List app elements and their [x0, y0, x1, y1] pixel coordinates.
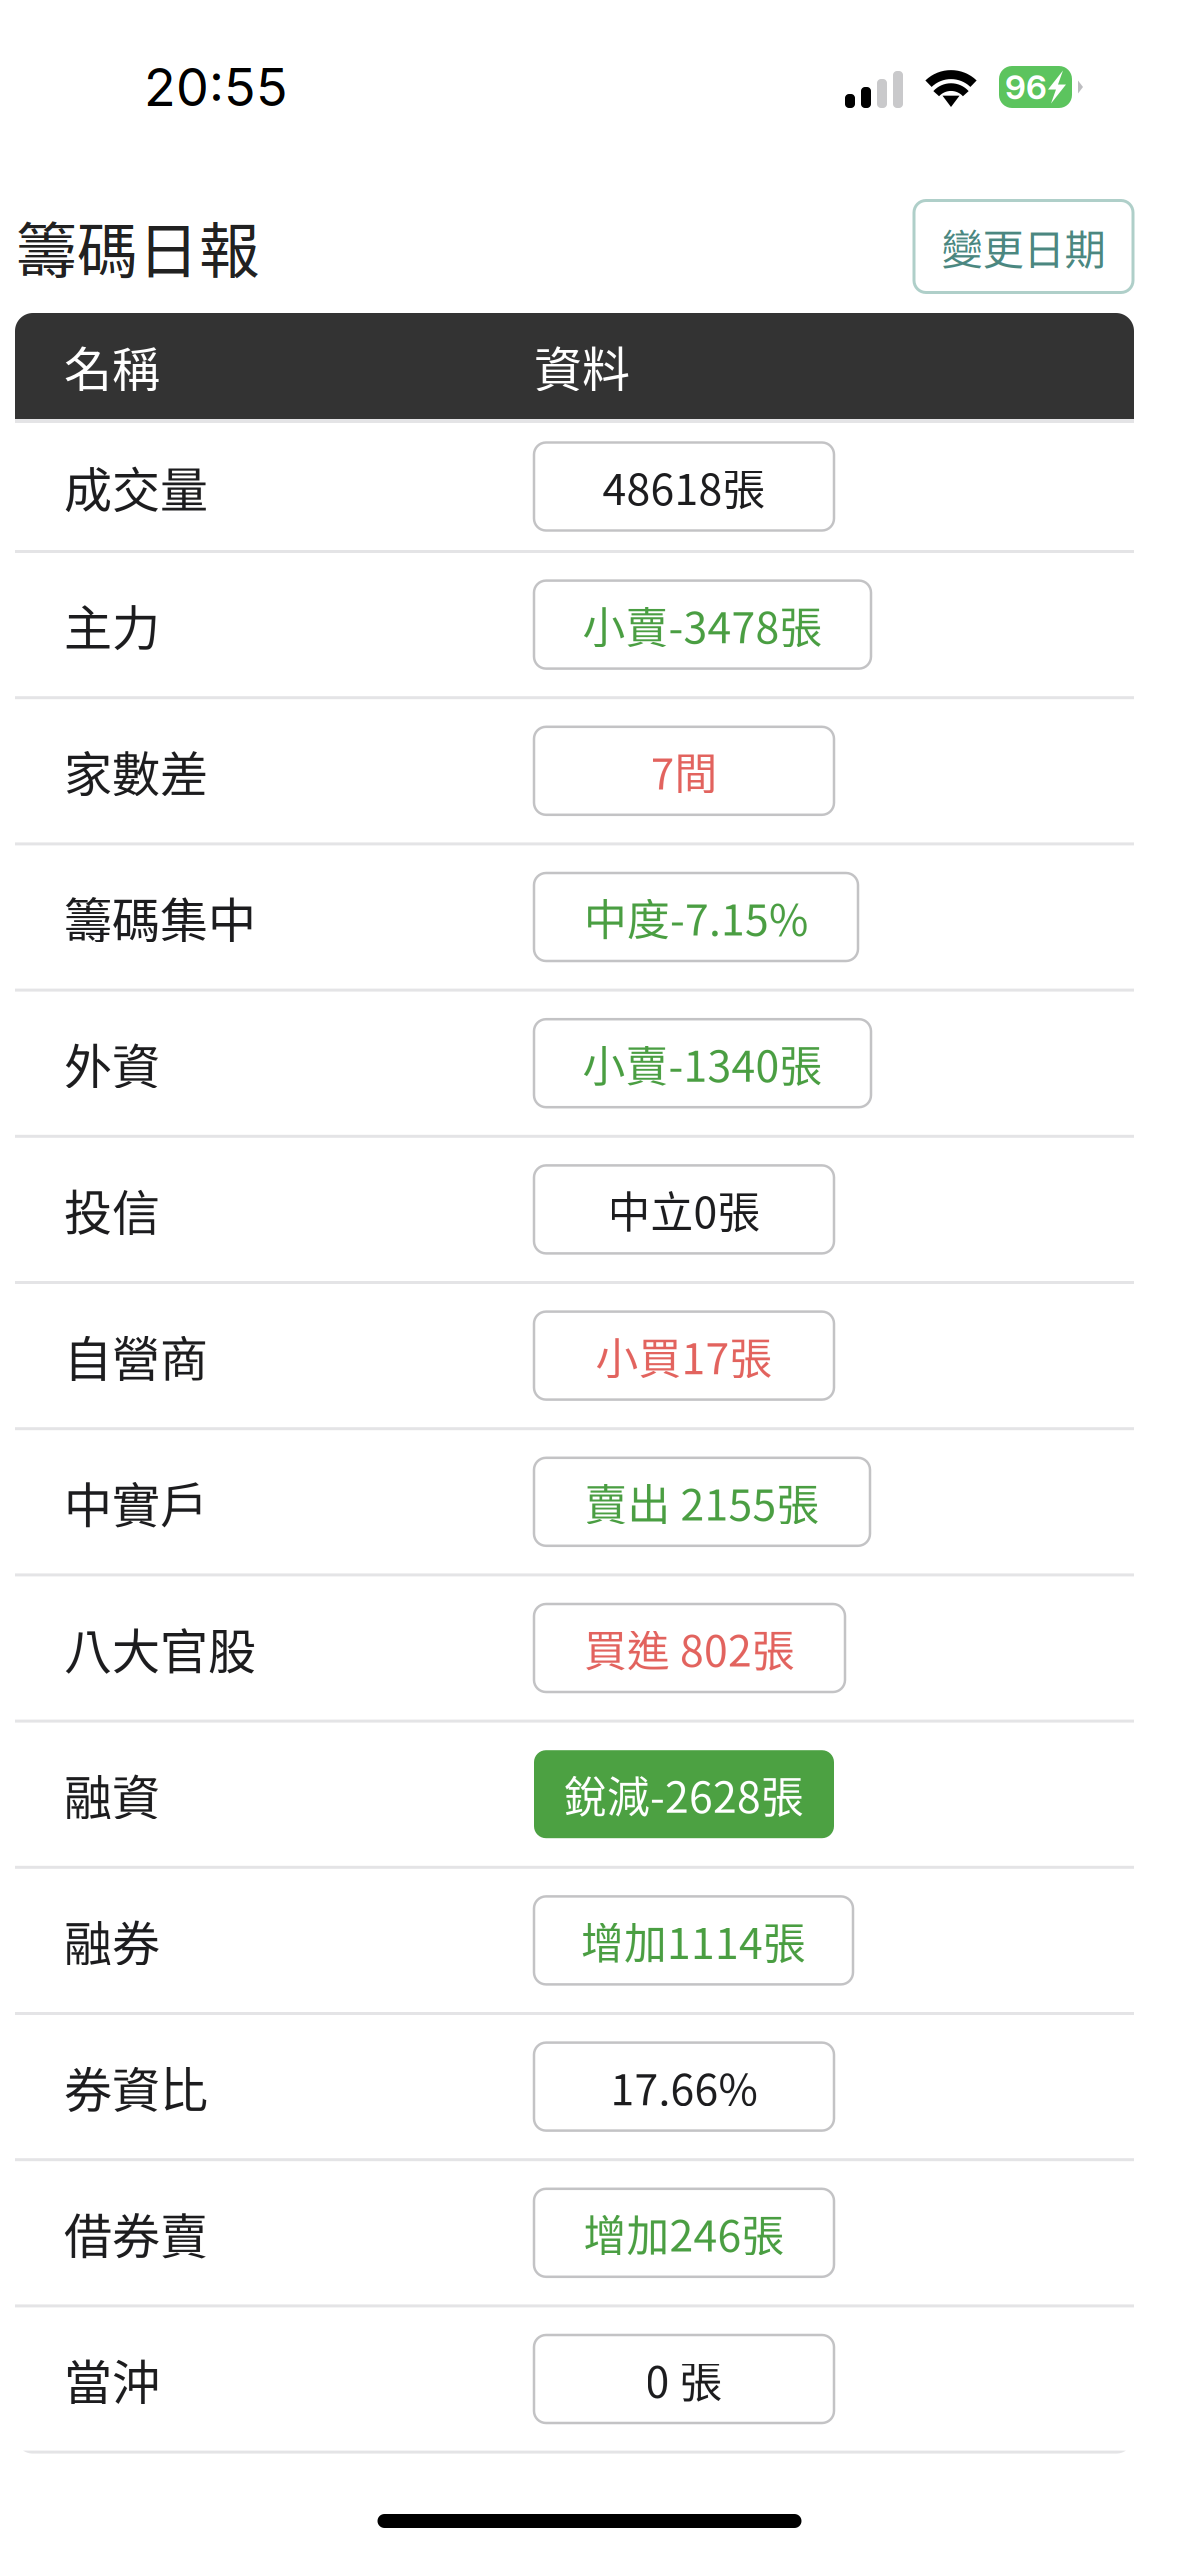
staticText: 17.66%	[610, 2056, 757, 2117]
staticText: 20:55	[144, 55, 288, 118]
staticText: 融券	[64, 1906, 160, 1975]
staticText: 中立0張	[607, 1178, 760, 1240]
staticText: 96	[1005, 67, 1047, 107]
staticText: 48618張	[602, 456, 765, 517]
staticText: 小賣-1340張	[582, 1032, 822, 1094]
staticText: 中度-7.15%	[584, 886, 808, 948]
staticText: 賣出 2155張	[584, 1471, 819, 1533]
staticText: 中實戶	[64, 1467, 208, 1536]
staticText: 成交量	[64, 452, 208, 521]
staticText: 自營商	[64, 1321, 208, 1390]
button[interactable]: 變更日期	[914, 200, 1133, 292]
staticText: 券資比	[64, 2052, 208, 2121]
staticText: 增加246張	[583, 2202, 784, 2264]
staticText: 小買17張	[595, 1325, 772, 1386]
staticText: 小賣-3478張	[582, 594, 822, 655]
staticText: 八大官股	[64, 1613, 256, 1683]
staticText: 融資	[64, 1759, 160, 1829]
staticText: 投信	[64, 1175, 160, 1244]
staticText: 名稱	[64, 331, 160, 401]
staticText: 銳減-2628張	[564, 1763, 804, 1825]
staticText: 7間	[650, 740, 717, 802]
staticText: 增加1114張	[581, 1909, 806, 1971]
staticText: 籌碼集中	[64, 882, 256, 952]
staticText: 0 張	[645, 2348, 722, 2410]
staticText: 變更日期	[941, 217, 1105, 276]
staticText: 買進 802張	[584, 1617, 795, 1679]
staticText: 籌碼日報	[16, 203, 260, 290]
staticText: 借券賣	[64, 2198, 208, 2267]
staticText: 資料	[534, 331, 630, 401]
staticText: 當沖	[64, 2344, 160, 2414]
staticText: 主力	[64, 590, 160, 659]
staticText: 外資	[64, 1028, 160, 1098]
staticText: 家數差	[64, 736, 208, 805]
